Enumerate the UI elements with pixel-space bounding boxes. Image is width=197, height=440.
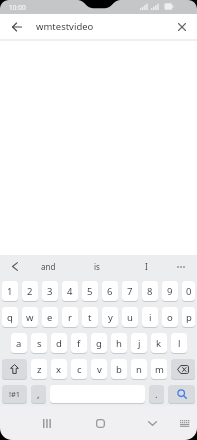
staticText: z [37, 363, 42, 376]
button[interactable]: 4 [62, 281, 78, 301]
staticText: wmtestvideo [36, 20, 94, 33]
button[interactable]: s [31, 333, 47, 353]
staticText: x [56, 363, 62, 376]
staticText: p [186, 311, 192, 324]
staticText: e [47, 311, 53, 324]
button[interactable]: g [91, 333, 107, 353]
staticText: l [178, 337, 181, 350]
button[interactable] [138, 406, 166, 440]
staticText: is [94, 261, 100, 272]
button[interactable]: o [162, 307, 178, 327]
staticText: 1 [7, 285, 13, 298]
staticText: 3 [47, 285, 53, 298]
staticText: and [41, 261, 56, 272]
button[interactable] [173, 406, 197, 440]
button[interactable]: u [122, 307, 138, 327]
staticText: v [97, 363, 102, 376]
staticText: i [149, 311, 152, 324]
button[interactable]: wmtestvideo [36, 14, 167, 39]
button[interactable]: z [31, 359, 47, 379]
staticText: , [37, 388, 40, 401]
button[interactable]: t [82, 307, 98, 327]
button[interactable]: h [111, 333, 127, 353]
staticText: 6 [107, 285, 113, 298]
staticText: f [77, 337, 81, 350]
button[interactable]: r [62, 307, 78, 327]
staticText: I [145, 261, 148, 272]
staticText: g [96, 337, 102, 350]
staticText: c [77, 363, 82, 376]
staticText: h [116, 337, 122, 350]
button[interactable] [165, 255, 197, 278]
button[interactable]: m [151, 359, 167, 379]
staticText: s [37, 337, 42, 350]
button[interactable]: and [30, 255, 67, 278]
button[interactable]: is [67, 255, 127, 278]
button[interactable] [168, 385, 195, 403]
button[interactable]: x [51, 359, 67, 379]
button[interactable] [0, 255, 30, 278]
staticText: 7 [127, 285, 133, 298]
button[interactable]: . [149, 385, 164, 403]
button[interactable]: , [31, 385, 46, 403]
button[interactable] [0, 14, 33, 39]
button[interactable]: q [2, 307, 18, 327]
staticText: o [167, 311, 173, 324]
button[interactable]: 2 [22, 281, 38, 301]
staticText: n [136, 363, 142, 376]
button[interactable]: l [171, 333, 187, 353]
button[interactable]: 5 [82, 281, 98, 301]
staticText: k [156, 337, 162, 350]
button[interactable]: v [91, 359, 107, 379]
staticText: q [7, 311, 13, 324]
button[interactable] [33, 406, 61, 440]
button[interactable] [171, 359, 195, 379]
staticText: b [116, 363, 122, 376]
button[interactable]: e [42, 307, 58, 327]
staticText: 10:00 [9, 3, 26, 12]
button[interactable]: 7 [122, 281, 138, 301]
staticText: 9 [167, 285, 173, 298]
staticText: 8 [147, 285, 153, 298]
button[interactable]: I [127, 255, 165, 278]
staticText: y [108, 311, 113, 324]
button[interactable] [167, 14, 197, 39]
button[interactable]: 8 [142, 281, 158, 301]
button[interactable]: k [151, 333, 167, 353]
staticText: a [16, 337, 22, 350]
staticText: 0 [186, 285, 192, 298]
staticText: d [56, 337, 62, 350]
staticText: t [88, 311, 92, 324]
button[interactable]: a [11, 333, 27, 353]
staticText: 5 [87, 285, 93, 298]
button[interactable]: b [111, 359, 127, 379]
button[interactable]: 3 [42, 281, 58, 301]
staticText: u [127, 311, 133, 324]
button[interactable]: w [22, 307, 38, 327]
button[interactable]: d [51, 333, 67, 353]
button[interactable]: p [182, 307, 195, 327]
button[interactable] [86, 406, 114, 440]
button[interactable]: n [131, 359, 147, 379]
staticText: w [26, 311, 34, 324]
button[interactable]: f [71, 333, 87, 353]
staticText: 4 [67, 285, 73, 298]
button[interactable]: 1 [2, 281, 18, 301]
button[interactable]: 0 [182, 281, 195, 301]
button[interactable]: c [71, 359, 87, 379]
staticText: 2 [27, 285, 33, 298]
button[interactable]: y [102, 307, 118, 327]
button[interactable] [2, 359, 27, 379]
button[interactable]: !#1 [2, 385, 27, 403]
button[interactable]: j [131, 333, 147, 353]
staticText: m [155, 363, 164, 376]
staticText: j [138, 337, 141, 350]
button[interactable]: 6 [102, 281, 118, 301]
button[interactable]: i [142, 307, 158, 327]
button[interactable]: 9 [162, 281, 178, 301]
staticText: . [155, 388, 158, 401]
staticText: r [68, 311, 72, 324]
staticText: !#1 [9, 389, 21, 399]
